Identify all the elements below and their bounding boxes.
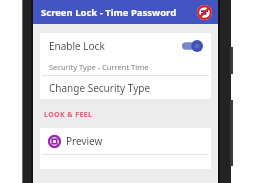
- button[interactable]: Enable Lock toggle: [182, 39, 202, 53]
- button[interactable]: Change Security Type: [40, 76, 211, 99]
- button[interactable]: Remove ads: [197, 5, 212, 20]
- staticText: LOOK & FEEL: [44, 110, 93, 120]
- button[interactable]: Security Type - Current Time: [40, 58, 211, 75]
- staticText: Enable Lock: [49, 39, 182, 53]
- staticText: Screen Lock - Time Password: [41, 6, 177, 19]
- button[interactable]: Preview: [40, 128, 211, 154]
- button[interactable]: Enable Lock: [40, 33, 211, 58]
- staticText: Preview: [66, 134, 103, 148]
- staticText: Change Security Type: [49, 81, 151, 95]
- staticText: Security Type - Current Time: [49, 62, 149, 72]
